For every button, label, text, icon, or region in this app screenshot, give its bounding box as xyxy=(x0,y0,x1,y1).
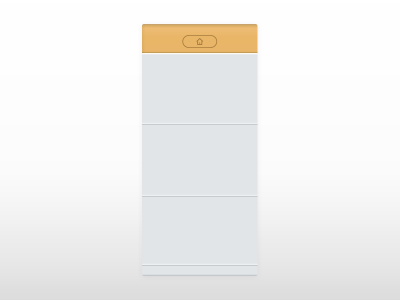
button[interactable]: Home xyxy=(182,34,218,48)
